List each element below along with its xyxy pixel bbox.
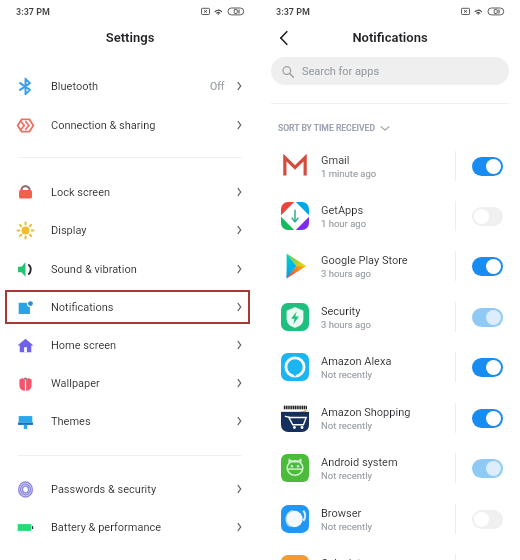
staticText: 3:37 PM xyxy=(16,7,50,18)
staticText: 3:37 PM xyxy=(276,7,310,18)
button[interactable]: Battery & performance xyxy=(0,510,260,544)
staticText: Wallpaper xyxy=(51,377,100,390)
staticText: Android system xyxy=(321,456,398,469)
staticText: 3 hours ago xyxy=(321,319,371,330)
button[interactable]: Notifications xyxy=(0,290,260,324)
button[interactable]: Toggle notifications xyxy=(472,358,503,377)
button[interactable]: Toggle notifications xyxy=(472,308,503,327)
button[interactable]: Display xyxy=(0,213,260,247)
button[interactable]: Sound & vibration xyxy=(0,252,260,286)
button[interactable]: GetApps xyxy=(260,194,520,238)
staticText: Not recently xyxy=(321,420,372,431)
staticText: Bluetooth xyxy=(51,80,99,93)
button[interactable]: SORT BY TIME RECEIVED xyxy=(278,123,390,133)
button[interactable]: Back xyxy=(274,27,296,49)
button[interactable]: Toggle notifications xyxy=(472,459,503,478)
staticText: Sound & vibration xyxy=(51,263,137,276)
button[interactable]: Wallpaper xyxy=(0,366,260,400)
button[interactable]: Toggle notifications xyxy=(472,510,503,529)
button[interactable]: Connection & sharing xyxy=(0,108,260,142)
staticText: Calculator xyxy=(321,557,371,560)
staticText: Display xyxy=(51,224,87,237)
button[interactable]: Google Play Store xyxy=(260,244,520,288)
button[interactable]: Toggle notifications xyxy=(472,207,503,226)
staticText: Themes xyxy=(51,415,91,428)
staticText: 1 minute ago xyxy=(321,168,377,179)
staticText: Google Play Store xyxy=(321,254,408,267)
staticText: Notifications xyxy=(51,301,114,314)
staticText: Not recently xyxy=(321,521,372,532)
staticText: Connection & sharing xyxy=(51,119,156,132)
button[interactable]: Lock screen xyxy=(0,175,260,209)
staticText: Settings xyxy=(0,30,260,45)
staticText: Lock screen xyxy=(51,186,111,199)
button[interactable]: Home screen xyxy=(0,328,260,362)
staticText: GetApps xyxy=(321,204,364,217)
staticText: Not recently xyxy=(321,369,372,380)
button[interactable]: Calculator xyxy=(260,547,520,560)
button[interactable]: Gmail xyxy=(260,144,520,188)
button[interactable]: Amazon Alexa xyxy=(260,345,520,389)
staticText: Home screen xyxy=(51,339,117,352)
button[interactable]: Security xyxy=(260,295,520,339)
staticText: Browser xyxy=(321,507,362,520)
button[interactable]: Search for apps xyxy=(271,57,509,85)
button[interactable]: Passwords & security xyxy=(0,472,260,506)
staticText: Passwords & security xyxy=(51,483,157,496)
button[interactable]: Toggle notifications xyxy=(472,157,503,176)
button[interactable]: Themes xyxy=(0,404,260,438)
staticText: Notifications xyxy=(260,30,520,45)
staticText: 3 hours ago xyxy=(321,268,371,279)
staticText: Amazon Alexa xyxy=(321,355,392,368)
staticText: Not recently xyxy=(321,470,372,481)
staticText: Search for apps xyxy=(302,65,380,78)
button[interactable]: Android system xyxy=(260,446,520,490)
staticText: Amazon Shopping xyxy=(321,406,411,419)
staticText: Off xyxy=(210,80,225,92)
button[interactable]: Browser xyxy=(260,497,520,541)
button[interactable]: Toggle notifications xyxy=(472,409,503,428)
button[interactable]: Bluetooth xyxy=(0,69,260,103)
staticText: Battery & performance xyxy=(51,521,162,534)
staticText: SORT BY TIME RECEIVED xyxy=(278,123,376,133)
staticText: 1 hour ago xyxy=(321,218,367,229)
button[interactable]: Toggle notifications xyxy=(472,257,503,276)
staticText: Security xyxy=(321,305,361,318)
button[interactable]: Amazon Shopping xyxy=(260,396,520,440)
staticText: Gmail xyxy=(321,154,350,167)
